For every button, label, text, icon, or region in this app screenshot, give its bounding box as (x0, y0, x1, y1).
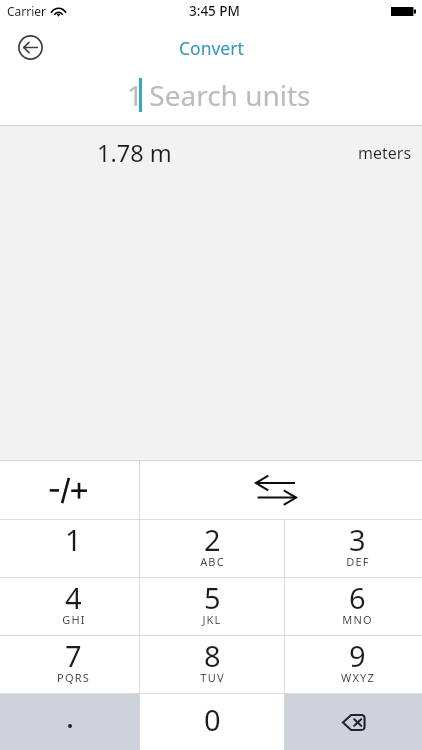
button[interactable]: 0 (140, 694, 284, 750)
staticText: 3:45 PM (189, 2, 240, 20)
staticText: meters (358, 142, 412, 164)
button[interactable]: 7 (0, 636, 139, 693)
button[interactable]: Backspace (285, 694, 422, 750)
staticText: PQRS (57, 670, 90, 685)
button[interactable] (0, 694, 139, 750)
staticText: MNO (342, 612, 373, 627)
button[interactable]: 9 (285, 636, 422, 693)
button[interactable]: 1 (0, 70, 422, 125)
staticText: 8 (204, 636, 221, 675)
staticText: 1.78 m (97, 137, 172, 169)
staticText: 1 (127, 76, 140, 114)
staticText: 6 (349, 578, 366, 617)
staticText: Search units (142, 76, 311, 114)
staticText: 4 (65, 578, 82, 617)
button[interactable]: 1 (0, 520, 139, 577)
staticText: 1 (65, 520, 82, 559)
staticText: Carrier (7, 3, 47, 19)
staticText: 5 (204, 578, 221, 617)
staticText: ABC (200, 554, 225, 569)
button[interactable]: 1.78 m (0, 126, 422, 179)
staticText: GHI (62, 612, 86, 627)
staticText: JKL (202, 612, 222, 627)
staticText: WXYZ (341, 670, 375, 685)
button[interactable]: Back (12, 29, 49, 66)
button[interactable]: 8 (140, 636, 284, 693)
staticText: 3 (349, 520, 366, 559)
staticText: DEF (346, 554, 370, 569)
button[interactable]: 6 (285, 578, 422, 635)
staticText: 2 (204, 520, 221, 559)
button[interactable]: 2 (140, 520, 284, 577)
staticText: TUV (200, 670, 225, 685)
button[interactable]: Swap units (140, 461, 422, 519)
button[interactable]: Convert (179, 36, 244, 60)
staticText: 0 (204, 700, 221, 739)
button[interactable]: 3 (285, 520, 422, 577)
staticText: 7 (65, 636, 82, 675)
button[interactable]: 4 (0, 578, 139, 635)
button[interactable]: 5 (140, 578, 284, 635)
button[interactable] (0, 461, 139, 519)
staticText: 9 (349, 636, 366, 675)
